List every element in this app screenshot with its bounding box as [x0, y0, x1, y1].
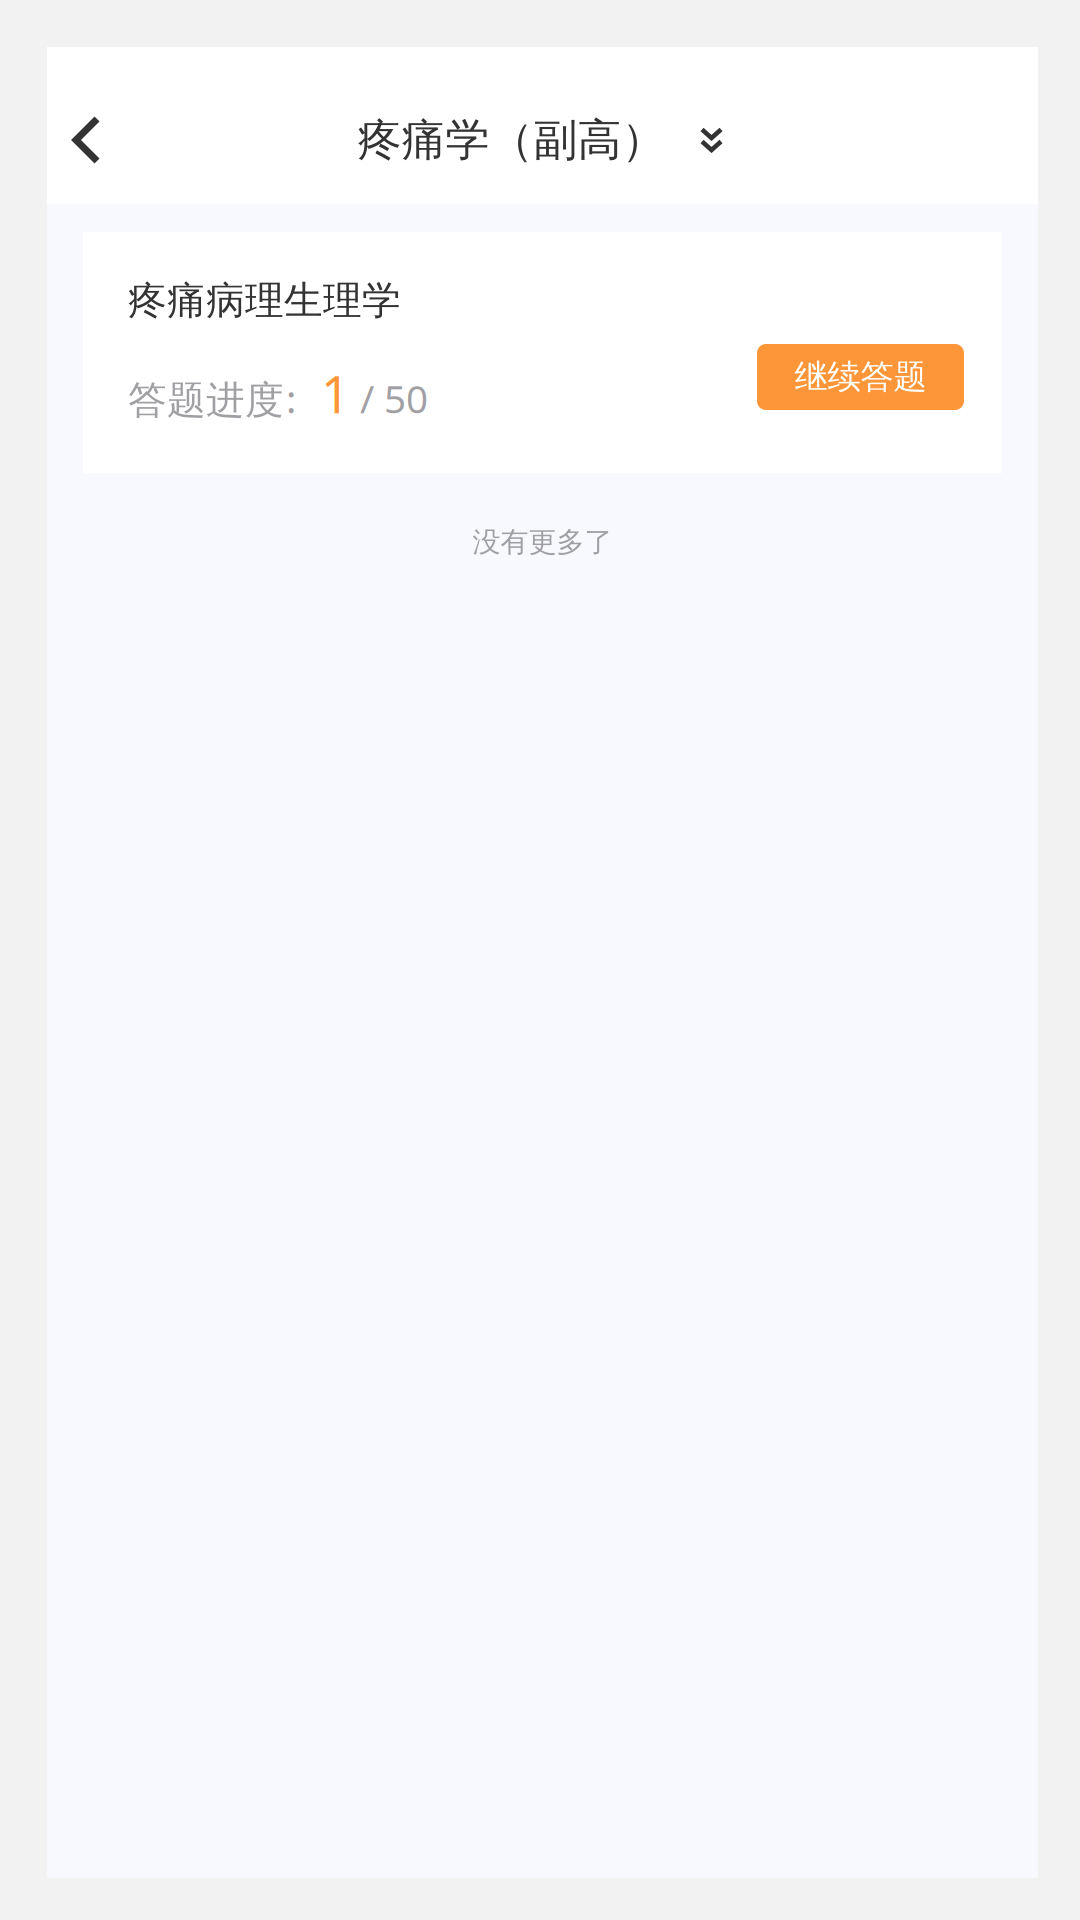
staticText: 没有更多了	[472, 525, 612, 559]
button[interactable]: 疼痛病理生理学	[83, 232, 1002, 473]
staticText: 1	[321, 360, 350, 427]
button[interactable]: Back	[47, 76, 126, 204]
staticText: 答题进度	[128, 377, 284, 424]
staticText: 疼痛学（副高）	[357, 113, 665, 167]
staticText: 继续答题	[794, 356, 926, 397]
staticText: 疼痛病理生理学	[128, 277, 401, 324]
button[interactable]: 继续答题	[757, 344, 964, 410]
staticText: :	[286, 373, 296, 424]
staticText: / 50	[350, 373, 428, 424]
